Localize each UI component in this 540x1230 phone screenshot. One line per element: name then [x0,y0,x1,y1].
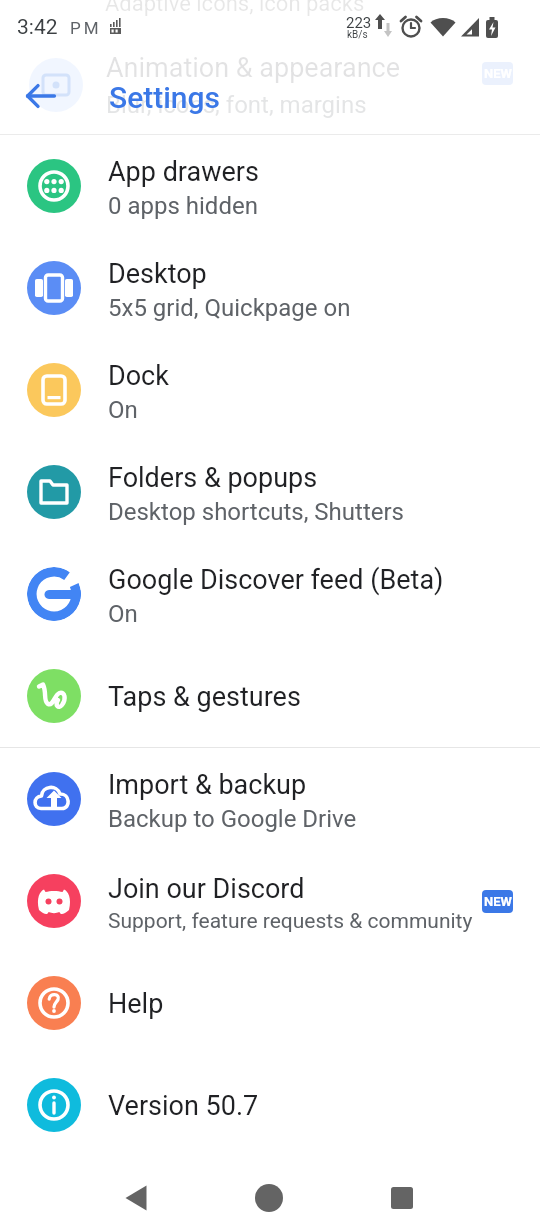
staticText: Taps & gestures [108,681,301,713]
staticText: Folders & popups [108,462,318,494]
button[interactable]: Back [97,1163,177,1230]
staticText: Google Discover feed (Beta) [108,564,444,596]
staticText: Help [108,988,164,1020]
staticText: Support, feature requests & community [108,909,473,934]
staticText: 223 [346,14,372,32]
staticText: On [108,396,138,424]
staticText: Adaptive icons, icon packs [105,0,365,17]
button[interactable]: Google Discover feed (Beta) [0,543,540,645]
staticText: App drawers [108,156,259,188]
staticText: Blur, icons, font, margins [106,91,367,119]
staticText: Animation & appearance [106,52,401,84]
staticText: Dock [108,360,169,392]
staticText: 3:42 [17,15,58,40]
staticText: Import & backup [108,769,307,801]
staticText: Desktop [108,258,207,290]
staticText: Backup to Google Drive [108,805,357,833]
button[interactable]: Taps & gestures [0,645,540,747]
button[interactable]: Import & backup [0,748,540,850]
staticText: PM [70,18,102,38]
button[interactable]: Back [17,72,65,120]
staticText: 5x5 grid, Quickpage on [108,294,351,322]
staticText: NEW [484,894,512,909]
button[interactable]: Folders & popups [0,441,540,543]
staticText: Version 50.7 [108,1090,259,1122]
button[interactable]: Dock [0,339,540,441]
staticText: kB/s [347,29,368,41]
staticText: 0 apps hidden [108,192,258,220]
button[interactable]: Version 50.7 [0,1054,540,1156]
button[interactable]: App drawers [0,135,540,237]
button[interactable]: Recents [362,1163,442,1230]
button[interactable]: Help [0,952,540,1054]
staticText: Settings [109,80,221,115]
button[interactable]: Home [229,1163,309,1230]
staticText: NEW [484,66,512,81]
button[interactable]: Join our Discord [0,850,540,952]
staticText: Join our Discord [108,873,305,905]
button[interactable]: Desktop [0,237,540,339]
staticText: On [108,600,138,628]
staticText: Desktop shortcuts, Shutters [108,498,404,526]
